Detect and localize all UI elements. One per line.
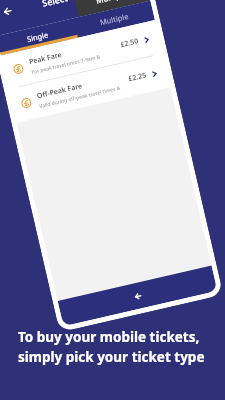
staticText: Multiple	[99, 11, 129, 27]
staticText: Peak Fare	[28, 50, 63, 67]
staticText: £2.25	[127, 70, 147, 84]
staticText: simply pick your ticket type	[18, 348, 205, 366]
staticText: Single	[26, 29, 49, 44]
button[interactable]: Single	[0, 18, 78, 56]
staticText: Off-Peak Fare	[36, 81, 84, 101]
staticText: For peak travel times 7-9am & 4.30-6pm	[31, 49, 119, 76]
staticText: Valid during off-peak travel times & wee…	[39, 83, 127, 110]
staticText: To buy your mobile tickets,	[18, 328, 200, 346]
button[interactable]: Multiple	[73, 0, 155, 38]
button[interactable]: Peak Fare	[1, 20, 163, 89]
button[interactable]: Back	[0, 0, 20, 24]
button[interactable]: Off-Peak Fare	[9, 54, 170, 123]
staticText: Select Ticket	[41, 0, 96, 9]
button[interactable]: Multiple	[72, 0, 150, 17]
staticText: Multiple	[95, 0, 128, 6]
staticText: £2.50	[120, 36, 139, 50]
button[interactable]: Back	[127, 285, 148, 307]
